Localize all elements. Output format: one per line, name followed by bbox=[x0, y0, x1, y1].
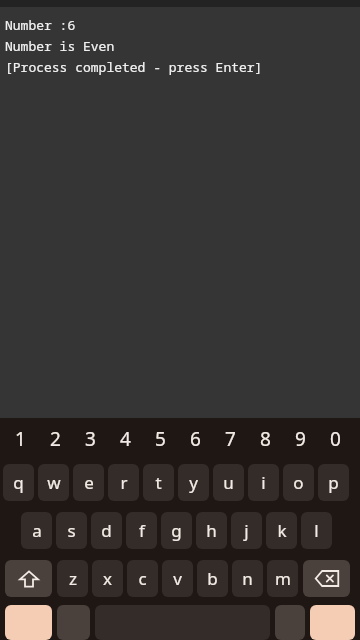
staticText: b bbox=[207, 567, 218, 590]
button[interactable]: l bbox=[301, 512, 332, 549]
button[interactable]: 6 bbox=[178, 419, 213, 459]
button[interactable]: u bbox=[213, 464, 244, 501]
button[interactable]: g bbox=[161, 512, 192, 549]
button[interactable]: a bbox=[21, 512, 52, 549]
staticText: 6 bbox=[190, 426, 201, 452]
staticText: n bbox=[242, 567, 253, 590]
staticText: 0 bbox=[330, 426, 341, 452]
staticText: y bbox=[189, 471, 198, 494]
staticText: 4 bbox=[120, 426, 131, 452]
button[interactable]: 2 bbox=[38, 419, 73, 459]
button[interactable]: w bbox=[38, 464, 69, 501]
button[interactable]: m bbox=[267, 560, 298, 597]
button[interactable]: v bbox=[162, 560, 193, 597]
button[interactable]: p bbox=[318, 464, 349, 501]
button[interactable]: k bbox=[266, 512, 297, 549]
staticText: 3 bbox=[85, 426, 96, 452]
button[interactable]: i bbox=[248, 464, 279, 501]
staticText: i bbox=[261, 471, 266, 494]
staticText: 7 bbox=[225, 426, 236, 452]
staticText: 8 bbox=[260, 426, 271, 452]
staticText: v bbox=[173, 567, 182, 590]
button[interactable]: Symbols bbox=[5, 605, 52, 640]
button[interactable]: Comma bbox=[57, 605, 90, 640]
button[interactable]: r bbox=[108, 464, 139, 501]
staticText: d bbox=[101, 519, 112, 542]
staticText: u bbox=[223, 471, 234, 494]
button[interactable]: Enter bbox=[310, 605, 355, 640]
staticText: z bbox=[69, 567, 77, 590]
staticText: h bbox=[206, 519, 217, 542]
button[interactable]: 8 bbox=[248, 419, 283, 459]
button[interactable]: 7 bbox=[213, 419, 248, 459]
button[interactable]: d bbox=[91, 512, 122, 549]
staticText: Number is Even bbox=[5, 37, 115, 55]
button[interactable]: q bbox=[3, 464, 34, 501]
button[interactable]: n bbox=[232, 560, 263, 597]
staticText: s bbox=[67, 519, 76, 542]
staticText: 9 bbox=[295, 426, 306, 452]
button[interactable]: Period bbox=[275, 605, 305, 640]
button[interactable]: 9 bbox=[283, 419, 318, 459]
button[interactable]: Shift bbox=[5, 560, 52, 597]
staticText: 2 bbox=[50, 426, 61, 452]
staticText: m bbox=[275, 567, 291, 590]
button[interactable]: 0 bbox=[318, 419, 353, 459]
staticText: f bbox=[139, 519, 145, 542]
staticText: x bbox=[103, 567, 112, 590]
button[interactable]: Backspace bbox=[303, 560, 350, 597]
button[interactable]: h bbox=[196, 512, 227, 549]
button[interactable]: y bbox=[178, 464, 209, 501]
staticText: c bbox=[138, 567, 147, 590]
staticText: w bbox=[47, 471, 61, 494]
staticText: [Process completed - press Enter] bbox=[5, 58, 263, 76]
button[interactable]: 4 bbox=[108, 419, 143, 459]
button[interactable]: o bbox=[283, 464, 314, 501]
staticText: k bbox=[277, 519, 287, 542]
button[interactable]: z bbox=[57, 560, 88, 597]
button[interactable]: 5 bbox=[143, 419, 178, 459]
staticText: q bbox=[13, 471, 24, 494]
staticText: g bbox=[171, 519, 182, 542]
button[interactable]: x bbox=[92, 560, 123, 597]
staticText: r bbox=[120, 471, 128, 494]
button[interactable]: e bbox=[73, 464, 104, 501]
button[interactable]: s bbox=[56, 512, 87, 549]
button[interactable]: 1 bbox=[3, 419, 38, 459]
staticText: 5 bbox=[155, 426, 166, 452]
staticText: l bbox=[314, 519, 319, 542]
button[interactable]: c bbox=[127, 560, 158, 597]
button[interactable]: j bbox=[231, 512, 262, 549]
staticText: a bbox=[32, 519, 42, 542]
button[interactable]: b bbox=[197, 560, 228, 597]
staticText: Number :6 bbox=[5, 16, 76, 34]
staticText: e bbox=[84, 471, 94, 494]
button[interactable]: t bbox=[143, 464, 174, 501]
staticText: o bbox=[293, 471, 304, 494]
staticText: t bbox=[155, 471, 162, 494]
button[interactable]: 3 bbox=[73, 419, 108, 459]
staticText: j bbox=[244, 519, 249, 542]
staticText: 1 bbox=[15, 426, 26, 452]
staticText: p bbox=[328, 471, 339, 494]
button[interactable]: f bbox=[126, 512, 157, 549]
